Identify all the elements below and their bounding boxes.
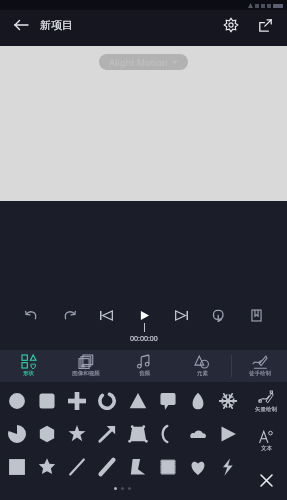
button[interactable]: Close <box>245 460 287 500</box>
button[interactable]: Shape 11 <box>64 421 90 447</box>
button[interactable]: 图像和视频 <box>57 350 115 382</box>
button[interactable]: Shape 18 <box>34 454 60 480</box>
button[interactable]: Shape 17 <box>4 454 30 480</box>
button[interactable]: Redo <box>57 303 81 327</box>
staticText: 徒手绘制 <box>249 370 271 377</box>
button[interactable]: Shape 6 <box>155 388 181 414</box>
button[interactable]: Export <box>253 13 277 37</box>
staticText: 形状 <box>23 370 34 377</box>
button[interactable]: Text <box>245 421 287 460</box>
button[interactable]: Shape 16 <box>215 421 241 447</box>
button[interactable]: Shape 9 <box>4 421 30 447</box>
staticText: 文本 <box>261 445 272 452</box>
button[interactable]: Shape 22 <box>155 454 181 480</box>
staticText: 新项目 <box>40 18 73 32</box>
button[interactable]: Shape 23 <box>185 454 211 480</box>
button[interactable]: Vector draw <box>245 382 287 421</box>
button[interactable]: Shape 10 <box>34 421 60 447</box>
button[interactable]: Undo <box>19 303 43 327</box>
button[interactable]: Settings <box>219 13 243 37</box>
button[interactable]: Shape 20 <box>94 454 120 480</box>
button[interactable]: Shape 3 <box>64 388 90 414</box>
button[interactable]: Shape 8 <box>215 388 241 414</box>
staticText: 音频 <box>139 370 150 377</box>
button[interactable]: 音频 <box>115 350 173 382</box>
button[interactable]: Shape 4 <box>94 388 120 414</box>
button[interactable]: Shape 13 <box>125 421 151 447</box>
button[interactable]: Shape 14 <box>155 421 181 447</box>
button[interactable]: Play <box>132 303 156 327</box>
button[interactable]: Alight Motion <box>99 54 188 70</box>
button[interactable]: Shape 2 <box>34 388 60 414</box>
button[interactable]: Shape 1 <box>4 388 30 414</box>
button[interactable]: 形状 <box>0 350 57 382</box>
button[interactable]: Shape 5 <box>125 388 151 414</box>
button[interactable]: Skip to end <box>169 303 193 327</box>
button[interactable]: Bookmark <box>244 303 268 327</box>
button[interactable]: Skip to start <box>94 303 118 327</box>
staticText: 元素 <box>197 370 208 377</box>
button[interactable]: Shape 24 <box>215 454 241 480</box>
staticText: 00:00:00 <box>130 334 158 344</box>
button[interactable]: Back <box>10 14 32 36</box>
button[interactable]: Shape 7 <box>185 388 211 414</box>
button[interactable]: 元素 <box>173 350 231 382</box>
button[interactable]: Shape 21 <box>125 454 151 480</box>
button[interactable]: Shape 15 <box>185 421 211 447</box>
staticText: 图像和视频 <box>72 370 100 377</box>
button[interactable]: Shape 12 <box>94 421 120 447</box>
staticText: Alight Motion <box>109 56 168 68</box>
button[interactable]: Loop <box>206 303 230 327</box>
button[interactable]: 徒手绘制 <box>232 350 287 382</box>
staticText: 矢量绘制 <box>255 406 277 413</box>
button[interactable]: Shape 19 <box>64 454 90 480</box>
